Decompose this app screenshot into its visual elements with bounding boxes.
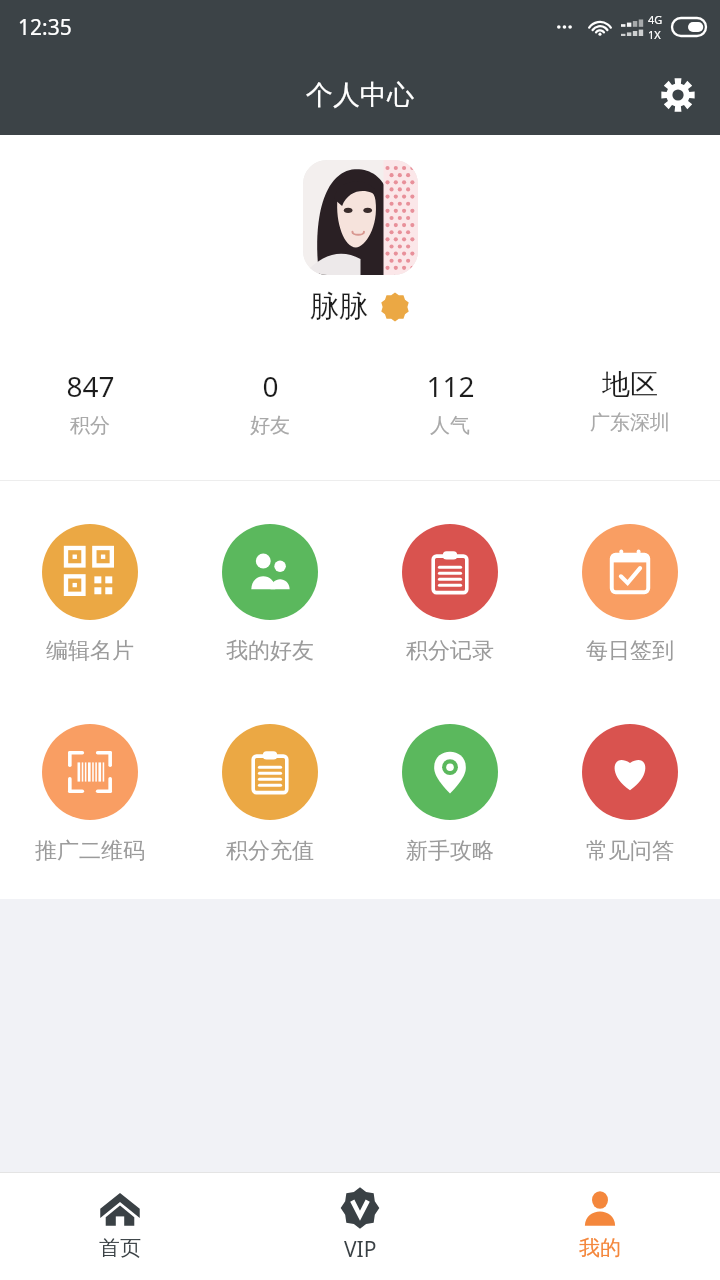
button[interactable]: 首页 <box>0 1173 240 1280</box>
staticText: 新手攻略 <box>406 837 494 865</box>
staticText: 地区 <box>602 367 658 402</box>
staticText: 好友 <box>250 413 290 438</box>
staticText: 个人中心 <box>306 78 414 112</box>
button[interactable]: 112 <box>360 363 540 442</box>
button[interactable]: 我的好友 <box>180 522 360 667</box>
button[interactable]: 积分充值 <box>180 722 360 867</box>
button[interactable]: 常见问答 <box>540 722 720 867</box>
staticText: 积分记录 <box>406 637 494 665</box>
button[interactable]: VIP <box>240 1173 480 1280</box>
staticText: 112 <box>426 367 475 405</box>
staticText: 人气 <box>430 413 470 438</box>
staticText: 4G <box>648 12 663 27</box>
button[interactable]: 新手攻略 <box>360 722 540 867</box>
staticText: 每日签到 <box>586 637 674 665</box>
staticText: 847 <box>66 367 115 405</box>
button[interactable]: 每日签到 <box>540 522 720 667</box>
button[interactable]: 847 <box>0 363 180 442</box>
staticText: 我的好友 <box>226 637 314 665</box>
staticText: 我的 <box>579 1235 621 1261</box>
staticText: 编辑名片 <box>46 637 134 665</box>
staticText: VIP <box>344 1235 377 1264</box>
button[interactable]: 积分记录 <box>360 522 540 667</box>
staticText: 积分 <box>70 413 110 438</box>
button[interactable]: Avatar <box>303 160 418 275</box>
staticText: 推广二维码 <box>35 837 145 865</box>
staticText: 常见问答 <box>586 837 674 865</box>
staticText: 积分充值 <box>226 837 314 865</box>
staticText: 首页 <box>99 1235 141 1261</box>
button[interactable]: 推广二维码 <box>0 722 180 867</box>
staticText: 广东深圳 <box>590 410 670 435</box>
button[interactable]: 编辑名片 <box>0 522 180 667</box>
button[interactable]: 我的 <box>480 1173 720 1280</box>
button[interactable]: Settings <box>654 71 702 119</box>
staticText: 脉脉 <box>310 288 368 325</box>
staticText: 0 <box>262 367 279 405</box>
button[interactable]: 0 <box>180 363 360 442</box>
button[interactable]: 地区 <box>540 363 720 439</box>
staticText: 1X <box>648 27 661 42</box>
staticText: 12:35 <box>18 13 72 42</box>
